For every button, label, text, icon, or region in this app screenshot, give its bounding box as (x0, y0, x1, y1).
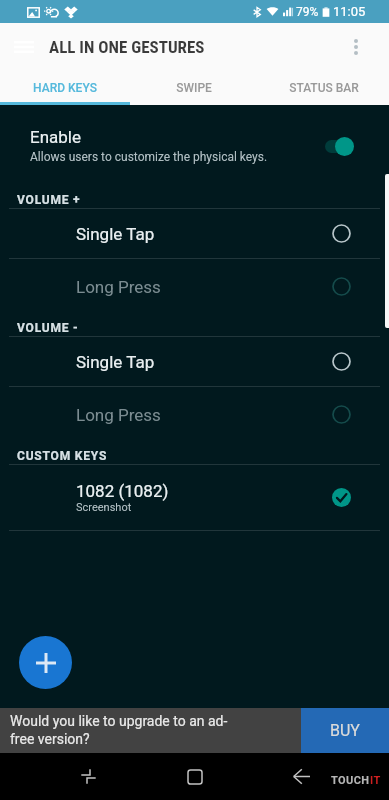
staticText: HARD KEYS (33, 81, 97, 95)
staticText: Would you like to upgrade to an ad- free… (10, 713, 282, 748)
staticText: SWIPE (176, 81, 212, 95)
staticText: 79% (296, 5, 319, 19)
button[interactable]: Back (274, 753, 328, 800)
button[interactable]: HARD KEYS (0, 70, 129, 105)
button[interactable]: Enable toggle (325, 135, 354, 157)
button[interactable]: Long Press (0, 387, 389, 442)
staticText: 1082 (1082) (76, 481, 169, 501)
staticText: CUSTOM KEYS (17, 449, 108, 463)
staticText: Long Press (76, 405, 332, 425)
staticText: TOUCH (331, 774, 370, 787)
button[interactable]: More options (340, 31, 372, 63)
staticText: Single Tap (76, 224, 332, 244)
button[interactable]: BUY (301, 708, 389, 753)
staticText: Enable (30, 127, 81, 147)
staticText: Long Press (76, 277, 332, 297)
button[interactable]: Enable (0, 105, 389, 186)
staticText: Allows users to customize the physical k… (30, 150, 268, 164)
button[interactable]: Single Tap (0, 209, 389, 258)
staticText: VOLUME - (17, 321, 79, 335)
staticText: BUY (330, 721, 360, 740)
button[interactable]: Long Press (0, 259, 389, 314)
staticText: VOLUME + (17, 193, 81, 207)
staticText: Screenshot (76, 501, 132, 514)
button[interactable]: Single Tap (0, 337, 389, 386)
button[interactable]: STATUS BAR (259, 70, 389, 105)
button[interactable]: Recents (61, 753, 115, 800)
staticText: Single Tap (76, 352, 332, 372)
staticText: IT (370, 774, 381, 787)
button[interactable]: Home (168, 753, 222, 800)
staticText: 11:05 (333, 4, 366, 19)
button[interactable]: 1082 (1082) (0, 465, 389, 530)
staticText: STATUS BAR (289, 81, 359, 95)
staticText: ALL IN ONE GESTURES (49, 37, 205, 57)
button[interactable]: SWIPE (129, 70, 259, 105)
button[interactable]: Add (19, 636, 72, 689)
